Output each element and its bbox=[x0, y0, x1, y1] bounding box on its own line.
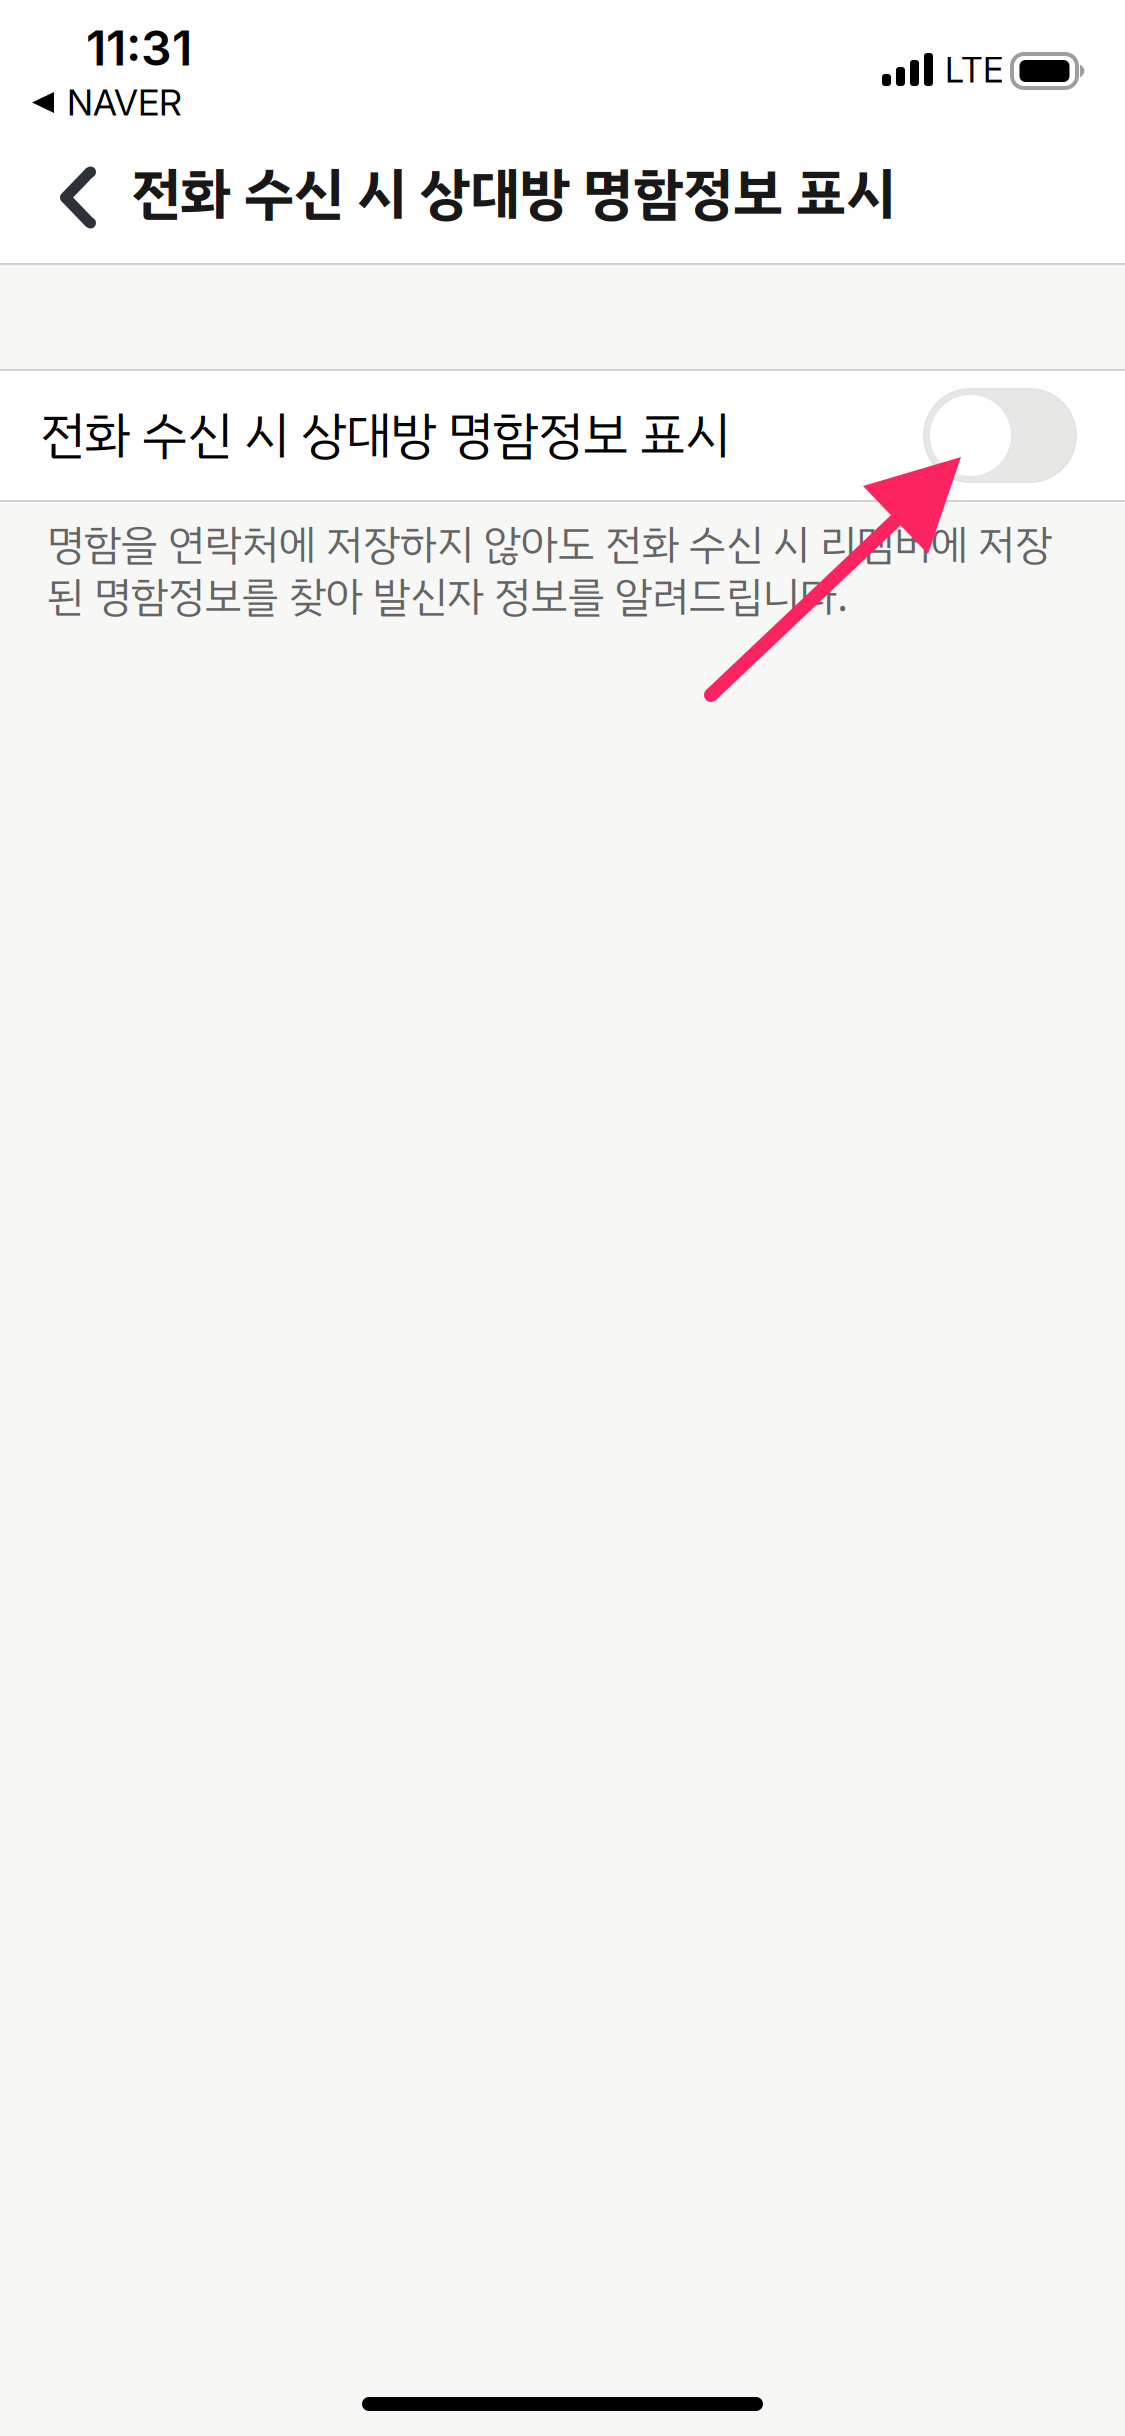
button[interactable]: Back bbox=[0, 132, 156, 263]
staticText: 11:31 bbox=[86, 19, 192, 77]
button[interactable]: NAVER bbox=[32, 89, 182, 116]
staticText: 된 명함정보를 찾아 발신자 정보를 알려드립니다. bbox=[47, 566, 848, 628]
button[interactable]: 전화 수신 시 상대방 명함정보 표시 bbox=[0, 371, 1125, 500]
staticText: NAVER bbox=[67, 81, 182, 124]
staticText: 명함을 연락처에 저장하지 않아도 전화 수신 시 리멤버에 저장 bbox=[47, 514, 1052, 576]
staticText: 전화 수신 시 상대방 명함정보 표시 bbox=[131, 152, 896, 236]
staticText: 전화 수신 시 상대방 명함정보 표시 bbox=[40, 397, 730, 473]
staticText: LTE bbox=[945, 49, 1003, 91]
button[interactable]: 전화 수신 시 상대방 명함정보 표시, off bbox=[924, 389, 1125, 482]
